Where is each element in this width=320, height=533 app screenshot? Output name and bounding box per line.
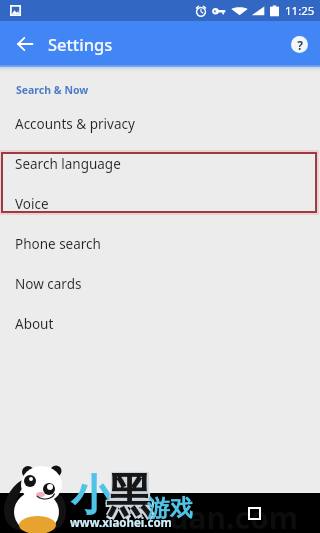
staticText: 黑: [108, 466, 154, 524]
staticText: 黑: [105, 469, 151, 527]
staticText: Settings: [48, 33, 113, 55]
button[interactable]: Phone search: [0, 224, 320, 264]
staticText: www.xiaohei.com: [70, 515, 172, 531]
staticText: 游戏: [147, 494, 193, 523]
staticText: uan.com: [169, 497, 298, 533]
staticText: Voice: [15, 195, 49, 213]
staticText: 黑: [106, 467, 152, 525]
staticText: 小: [71, 470, 113, 523]
staticText: Now cards: [15, 275, 82, 293]
staticText: Search & Now: [16, 83, 89, 97]
staticText: Phone search: [15, 235, 101, 253]
button[interactable]: Search language: [0, 144, 320, 184]
staticText: 黑: [108, 469, 154, 527]
staticText: ?: [297, 37, 303, 53]
staticText: About: [15, 315, 54, 333]
button[interactable]: Accounts & privacy: [0, 104, 320, 144]
button[interactable]: Help: [284, 29, 314, 59]
button[interactable]: Back: [8, 27, 42, 61]
staticText: Accounts & privacy: [15, 115, 135, 133]
staticText: 黑: [105, 466, 151, 524]
button[interactable]: Recents: [248, 507, 261, 520]
button[interactable]: Voice: [0, 184, 320, 224]
staticText: 11:25: [285, 3, 315, 19]
staticText: Search language: [15, 155, 121, 173]
button[interactable]: Now cards: [0, 264, 320, 304]
button[interactable]: About: [0, 304, 320, 344]
